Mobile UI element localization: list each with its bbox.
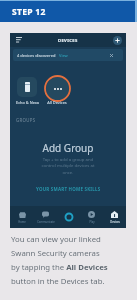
button[interactable]: Menu xyxy=(16,37,22,43)
button[interactable]: Dismiss xyxy=(110,54,113,57)
staticText: Add Group xyxy=(10,141,126,155)
staticText: STEP 12 xyxy=(12,6,46,18)
staticText: YOUR SMART HOME SKILLS xyxy=(36,186,101,192)
button[interactable]: Play xyxy=(80,206,103,228)
button[interactable]: Communicate xyxy=(34,206,57,228)
staticText: Home xyxy=(18,220,26,224)
button[interactable]: Devices xyxy=(103,206,126,228)
staticText: Play xyxy=(89,220,95,224)
staticText: You can view your linked Swann Security … xyxy=(11,234,108,286)
button[interactable]: 4 devices discovered xyxy=(13,49,123,61)
button[interactable] xyxy=(17,77,37,97)
button[interactable] xyxy=(44,75,71,102)
staticText: 4 devices discovered xyxy=(17,53,56,58)
button[interactable]: Add device xyxy=(113,36,122,45)
staticText: GROUPS xyxy=(16,117,36,123)
button[interactable]: Home xyxy=(10,206,34,228)
staticText: DEVICES xyxy=(58,38,78,44)
button[interactable]: YOUR SMART HOME SKILLS xyxy=(10,184,126,194)
staticText: Tap + to add a group and control multipl… xyxy=(34,156,102,176)
staticText: Communicate xyxy=(37,220,55,224)
staticText: All Devices xyxy=(47,100,67,105)
staticText: View xyxy=(59,53,68,58)
staticText: Devices xyxy=(110,220,120,224)
button[interactable]: Alexa xyxy=(57,206,80,228)
staticText: Echo & Nexa xyxy=(16,100,39,105)
